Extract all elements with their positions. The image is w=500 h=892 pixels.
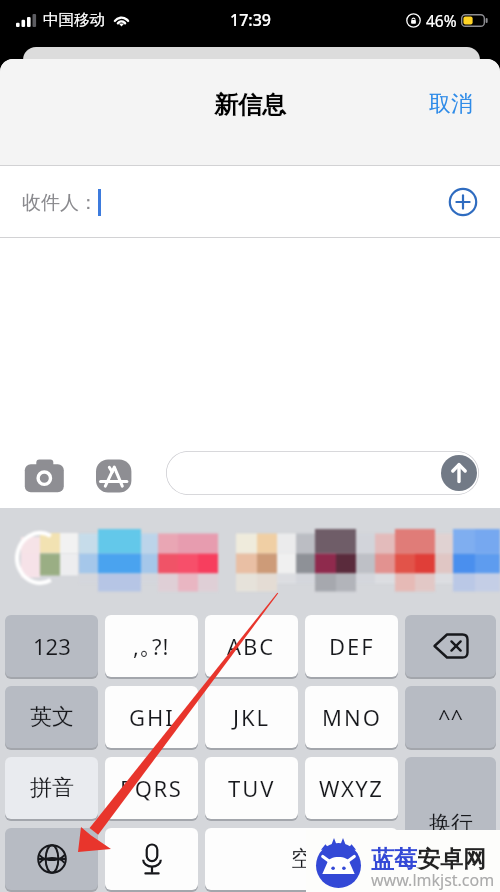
button[interactable]: ABC [205, 615, 298, 677]
staticText: MNO [322, 702, 382, 732]
button[interactable]: DEF [305, 615, 398, 677]
button[interactable]: JKL [205, 686, 298, 748]
staticText: 中国移动 [43, 10, 105, 30]
button[interactable]: GHI [105, 686, 198, 748]
staticText: ^^ [438, 702, 464, 732]
button[interactable]: WXYZ [305, 757, 398, 819]
button[interactable]: 取消 [411, 81, 491, 127]
button[interactable]: MNO [305, 686, 398, 748]
staticText: 收件人： [22, 191, 98, 215]
staticText: 蓝莓 [371, 845, 417, 874]
staticText: 安卓网 [417, 845, 486, 874]
button[interactable]: App Store [92, 454, 136, 496]
button[interactable]: 英文 [5, 686, 98, 748]
button[interactable]: ^^ [405, 686, 496, 748]
staticText: ,｡?! [133, 631, 170, 661]
staticText: WXYZ [319, 773, 384, 803]
button[interactable]: Voice input [105, 828, 198, 890]
staticText: TUV [228, 773, 276, 803]
button[interactable]: 拼音 [5, 757, 98, 819]
button[interactable]: 换行 [405, 757, 496, 890]
button[interactable]: ,｡?! [105, 615, 198, 677]
staticText: JKL [233, 702, 271, 732]
button[interactable]: 123 [5, 615, 98, 677]
staticText: 空 [291, 845, 313, 873]
staticText: 英文 [30, 703, 74, 731]
staticText: 17:39 [230, 9, 271, 31]
button[interactable]: Camera [19, 454, 69, 494]
staticText: 新信息 [214, 90, 286, 120]
staticText: 拼音 [30, 774, 74, 802]
button[interactable]: Backspace [405, 615, 496, 677]
staticText: DEF [329, 631, 375, 661]
button[interactable]: Send [441, 455, 477, 491]
staticText: 取消 [429, 90, 473, 118]
staticText: ABC [227, 631, 276, 661]
button[interactable]: Send [166, 451, 479, 495]
staticText: 46% [426, 10, 457, 31]
staticText: 123 [33, 631, 71, 661]
button[interactable]: Switch keyboard [5, 828, 98, 890]
staticText: GHI [129, 702, 175, 732]
staticText: www.lmkjst.com [371, 869, 495, 891]
button[interactable]: PQRS [105, 757, 198, 819]
button[interactable]: 空 [205, 828, 398, 890]
staticText: PQRS [120, 773, 183, 803]
staticText: 换行 [429, 810, 473, 838]
button[interactable]: Add recipient [448, 187, 478, 217]
button[interactable]: TUV [205, 757, 298, 819]
